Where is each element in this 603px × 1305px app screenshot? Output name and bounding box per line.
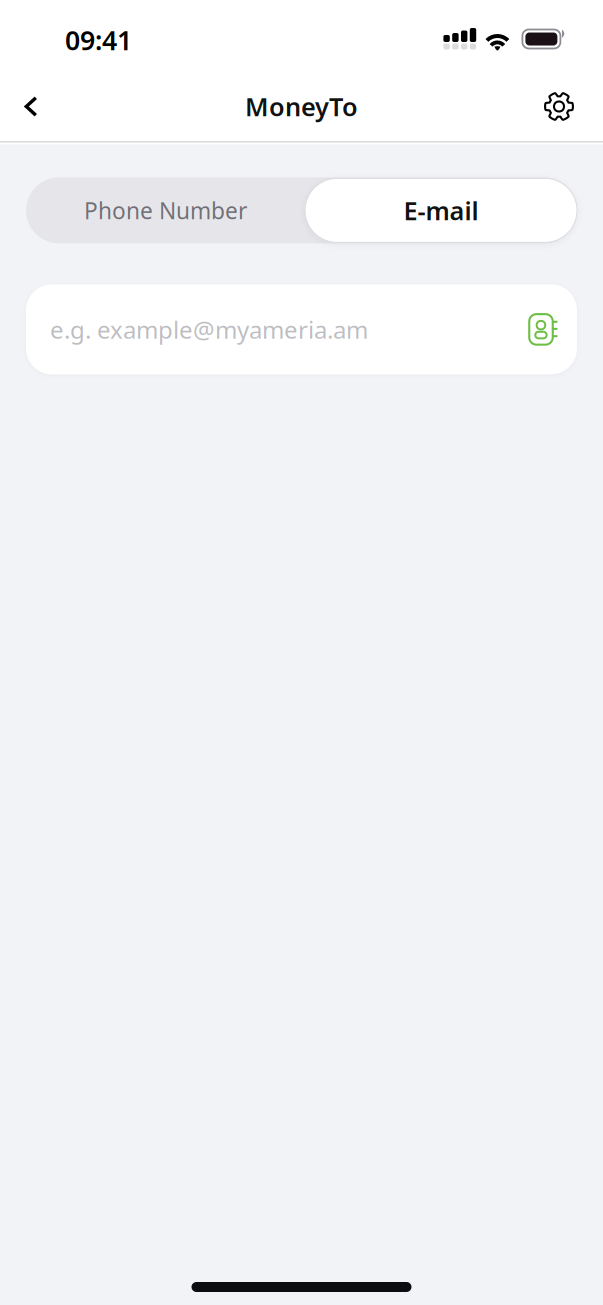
button[interactable]: Phone Number — [26, 177, 305, 243]
staticText: 09:41 — [65, 22, 132, 58]
staticText: Phone Number — [84, 195, 247, 225]
staticText: MoneyTo — [245, 90, 358, 123]
button[interactable]: Back — [4, 79, 58, 133]
button[interactable]: Settings — [532, 79, 586, 133]
button[interactable]: e.g. example@myameria.am — [26, 284, 577, 374]
staticText: E-mail — [403, 194, 478, 227]
button[interactable]: E-mail — [305, 178, 577, 242]
staticText: e.g. example@myameria.am — [50, 313, 368, 345]
